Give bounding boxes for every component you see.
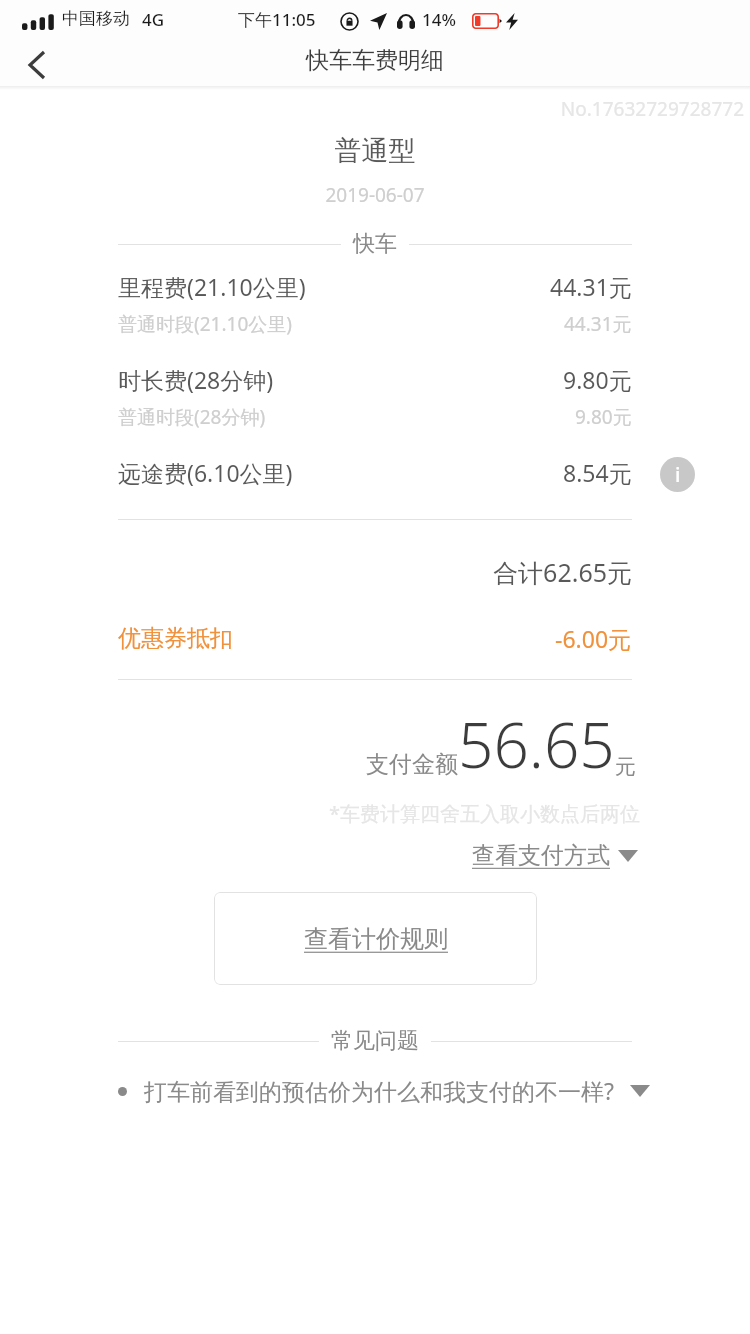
staticText: 9.80元 [575, 404, 632, 430]
staticText: -6.00元 [555, 623, 632, 654]
staticText: 4G [142, 8, 165, 31]
button[interactable]: 打车前看到的预估价为什么和我支付的不一样? [118, 1075, 650, 1106]
button[interactable]: 查看计价规则 [214, 892, 537, 985]
staticText: 打车前看到的预估价为什么和我支付的不一样? [144, 1075, 620, 1106]
staticText: i [675, 461, 681, 488]
staticText: 56.65 [458, 702, 615, 786]
staticText: 9.80元 [563, 364, 632, 395]
staticText: 元 [615, 754, 636, 780]
staticText: 中国移动 [62, 8, 130, 29]
staticText: 里程费(21.10公里) [118, 271, 306, 302]
staticText: 优惠券抵扣 [118, 624, 233, 653]
staticText: 8.54元 [563, 457, 632, 488]
staticText: 时长费(28分钟) [118, 364, 274, 395]
staticText: 常见问题 [331, 1027, 419, 1055]
staticText: 快车 [353, 230, 397, 258]
button[interactable]: 查看支付方式 [472, 841, 638, 870]
staticText: 普通时段(21.10公里) [118, 311, 292, 337]
button[interactable]: 远途费说明 [660, 457, 695, 492]
staticText: *车费计算四舍五入取小数点后两位 [0, 800, 640, 827]
staticText: 2019-06-07 [0, 182, 750, 208]
staticText: No.17632729728772 [0, 96, 744, 122]
staticText: 下午11:05 [238, 8, 316, 31]
staticText: 普通时段(28分钟) [118, 404, 266, 430]
staticText: 合计62.65元 [0, 555, 632, 589]
staticText: 快车车费明细 [0, 46, 750, 75]
button[interactable]: 返回 [12, 44, 62, 86]
staticText: 44.31元 [564, 311, 632, 337]
staticText: 普通型 [0, 134, 750, 168]
staticText: 远途费(6.10公里) [118, 457, 293, 488]
staticText: 14% [422, 8, 456, 31]
staticText: 查看支付方式 [472, 841, 610, 870]
staticText: 查看计价规则 [304, 924, 448, 954]
staticText: 支付金额 [366, 750, 458, 779]
staticText: 44.31元 [550, 271, 632, 302]
button[interactable]: 优惠券抵扣 [118, 623, 632, 654]
